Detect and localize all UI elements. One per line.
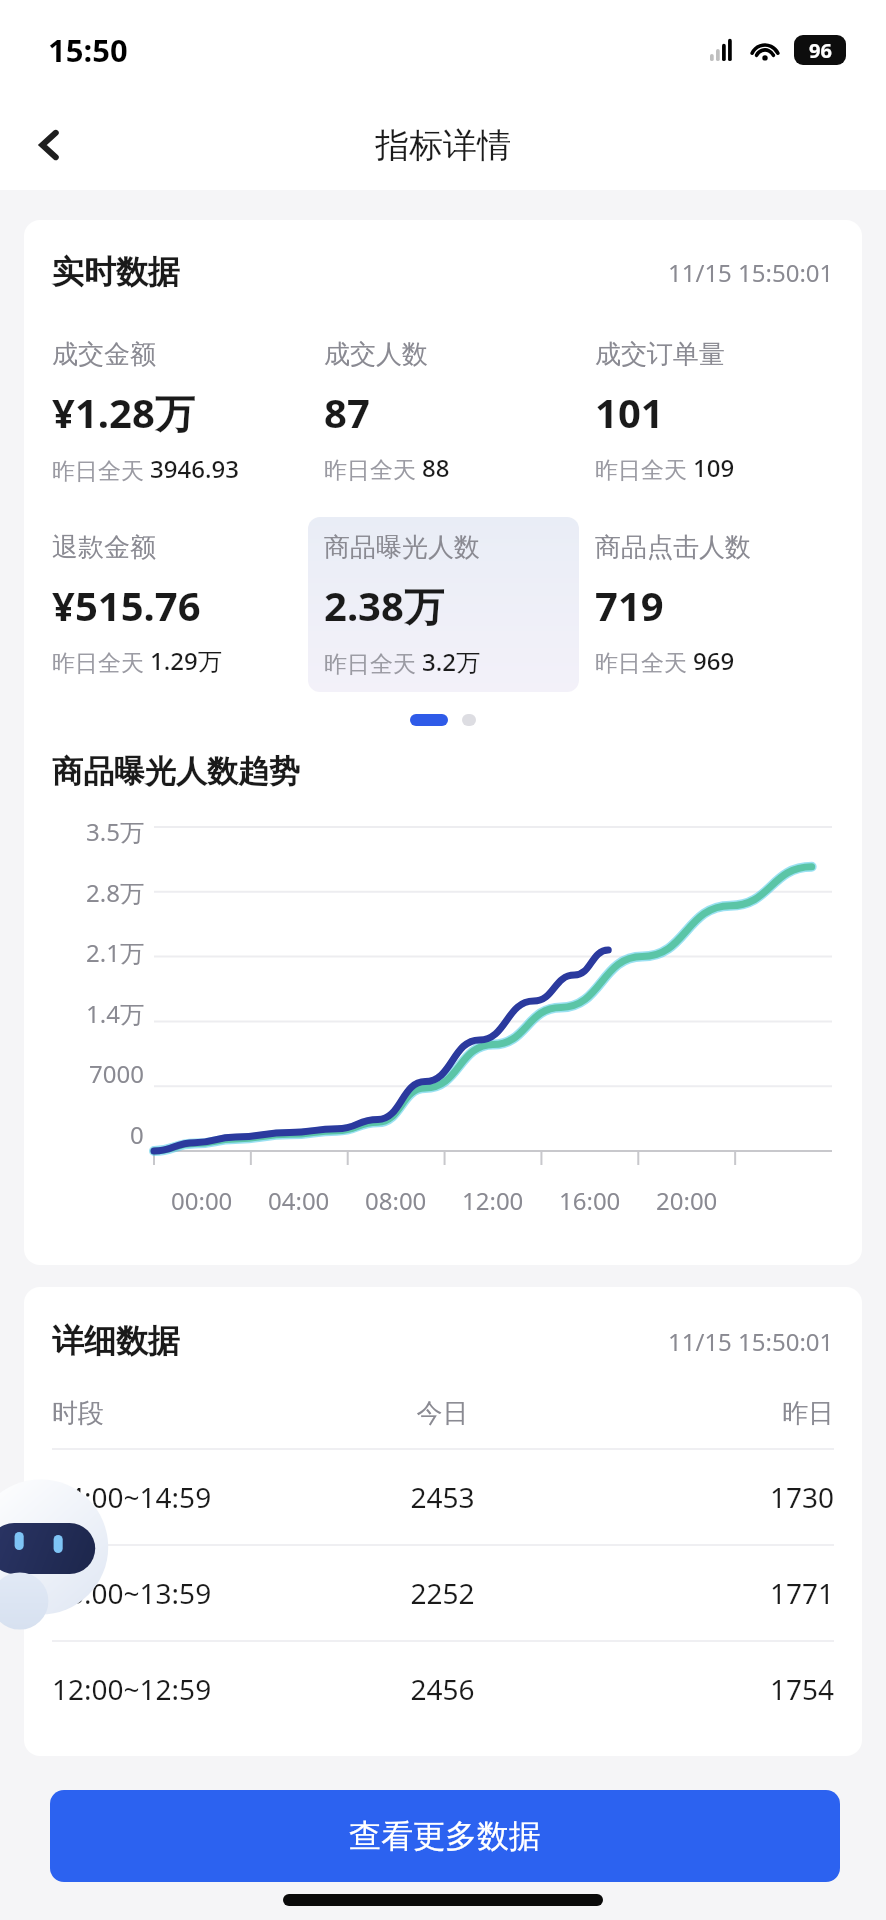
staticText: 昨日全天 — [595, 453, 693, 484]
staticText: 109 — [693, 451, 735, 484]
staticText: 3.5万 — [86, 815, 144, 848]
staticText: 3946.93 — [150, 452, 239, 485]
staticText: 14:00~14:59 — [52, 1478, 312, 1516]
button[interactable]: Back — [18, 113, 82, 177]
staticText: 11/15 15:50:01 — [668, 256, 834, 289]
staticText: 退款金额 — [52, 531, 156, 564]
button[interactable]: 成交订单量 — [579, 324, 850, 498]
staticText: 1771 — [573, 1574, 834, 1612]
button[interactable]: 13:00~13:59 — [24, 1546, 862, 1640]
staticText: 昨日全天 — [595, 646, 693, 677]
staticText: 08:00 — [365, 1184, 427, 1217]
staticText: 昨日全天 — [324, 453, 422, 484]
staticText: 16:00 — [559, 1184, 621, 1217]
staticText: 昨日全天 — [324, 647, 422, 678]
staticText: 商品曝光人数 — [324, 531, 480, 564]
button[interactable]: 14:00~14:59 — [24, 1450, 862, 1544]
staticText: 1.29万 — [150, 644, 222, 677]
staticText: 2453 — [312, 1478, 573, 1516]
staticText: 昨日全天 — [52, 454, 150, 485]
staticText: 1.4万 — [86, 997, 144, 1030]
staticText: 13:00~13:59 — [52, 1574, 312, 1612]
staticText: 12:00 — [462, 1184, 524, 1217]
staticText: 3.2万 — [422, 645, 480, 678]
button[interactable]: 商品曝光人数 — [308, 517, 579, 692]
button[interactable]: 12:00~12:59 — [24, 1642, 862, 1736]
staticText: 04:00 — [268, 1184, 330, 1217]
staticText: 96 — [809, 37, 832, 64]
staticText: 指标详情 — [375, 124, 511, 167]
staticText: 昨日全天 — [52, 646, 150, 677]
staticText: 2.38万 — [324, 578, 444, 633]
staticText: 719 — [595, 578, 664, 632]
staticText: 商品点击人数 — [595, 531, 751, 564]
staticText: 查看更多数据 — [349, 1816, 541, 1856]
staticText: 2.1万 — [86, 936, 144, 969]
button[interactable]: 退款金额 — [36, 517, 308, 691]
staticText: 1754 — [573, 1670, 834, 1708]
staticText: 今日 — [312, 1397, 573, 1430]
staticText: ¥515.76 — [52, 578, 201, 632]
button[interactable]: 查看更多数据 — [50, 1790, 840, 1882]
staticText: 969 — [693, 644, 735, 677]
staticText: 昨日 — [573, 1397, 834, 1430]
button[interactable]: 成交金额 — [36, 324, 308, 499]
staticText: 12:00~12:59 — [52, 1670, 312, 1708]
staticText: 0 — [130, 1118, 144, 1151]
staticText: 商品曝光人数趋势 — [52, 752, 300, 791]
staticText: 20:00 — [656, 1184, 718, 1217]
staticText: 2.8万 — [86, 876, 144, 909]
staticText: 1730 — [573, 1478, 834, 1516]
staticText: ¥1.28万 — [52, 385, 195, 440]
staticText: 7000 — [89, 1057, 144, 1090]
staticText: 87 — [324, 385, 370, 439]
button[interactable]: 成交人数 — [308, 324, 579, 498]
staticText: 2252 — [312, 1574, 573, 1612]
staticText: 00:00 — [171, 1184, 233, 1217]
staticText: 详细数据 — [52, 1321, 180, 1361]
staticText: 时段 — [52, 1397, 312, 1430]
staticText: 成交订单量 — [595, 338, 725, 371]
staticText: 成交人数 — [324, 338, 428, 371]
staticText: 88 — [422, 451, 450, 484]
staticText: 2456 — [312, 1670, 573, 1708]
staticText: 11/15 15:50:01 — [668, 1325, 834, 1358]
button[interactable]: 商品点击人数 — [579, 517, 850, 691]
staticText: 成交金额 — [52, 338, 156, 371]
button[interactable]: Assistant — [0, 1478, 116, 1628]
staticText: 实时数据 — [52, 252, 180, 292]
staticText: 15:50 — [48, 29, 128, 71]
staticText: 101 — [595, 385, 664, 439]
